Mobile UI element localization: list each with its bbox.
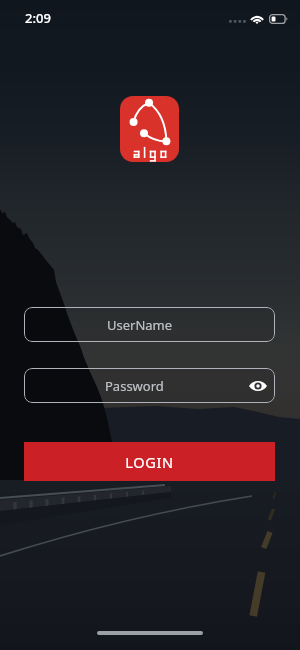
staticText: UserName — [107, 316, 173, 334]
staticText: 2:09 — [25, 9, 51, 27]
button[interactable]: UserName — [24, 307, 275, 342]
staticText: Password — [105, 377, 164, 395]
button[interactable]: LOGIN — [24, 442, 275, 481]
staticText: LOGIN — [125, 452, 174, 472]
button[interactable]: Password — [24, 368, 275, 403]
button[interactable]: Show password — [247, 375, 269, 397]
